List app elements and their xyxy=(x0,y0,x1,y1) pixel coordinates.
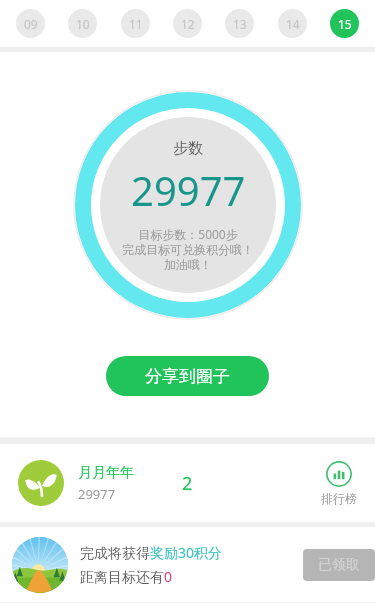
staticText: 2 xyxy=(182,471,193,496)
button[interactable]: 排行榜 xyxy=(321,461,357,506)
staticText: 月月年年 xyxy=(78,464,134,482)
staticText: 加油哦！ xyxy=(164,257,212,272)
button[interactable]: 10 xyxy=(68,9,97,38)
staticText: 排行榜 xyxy=(321,491,357,506)
staticText: 完成将获得奖励30积分 xyxy=(80,543,223,562)
staticText: 已领取 xyxy=(318,556,360,574)
button[interactable]: 分享到圈子 xyxy=(106,356,269,396)
staticText: 完成目标可兑换积分哦！ xyxy=(122,242,254,257)
button[interactable]: 09 xyxy=(16,9,45,38)
staticText: 15 xyxy=(338,16,352,32)
button[interactable]: 14 xyxy=(278,9,307,38)
button[interactable]: 11 xyxy=(121,9,150,38)
staticText: 距离目标还有0 xyxy=(80,567,173,586)
staticText: 分享到圈子 xyxy=(145,366,230,387)
staticText: 29977 xyxy=(131,163,246,217)
staticText: 13 xyxy=(233,16,247,32)
staticText: 11 xyxy=(129,16,143,32)
button[interactable]: 完成将获得奖励30积分 xyxy=(0,527,375,602)
button[interactable]: 12 xyxy=(173,9,202,38)
button[interactable]: 15 xyxy=(330,9,359,38)
staticText: 29977 xyxy=(78,485,116,503)
staticText: 12 xyxy=(181,16,195,32)
staticText: 目标步数：5000步 xyxy=(138,226,238,242)
staticText: 步数 xyxy=(173,139,203,158)
button[interactable]: 已领取 xyxy=(303,549,375,581)
button[interactable]: 13 xyxy=(225,9,254,38)
staticText: 09 xyxy=(24,16,38,32)
staticText: 14 xyxy=(286,16,300,32)
staticText: 10 xyxy=(76,16,90,32)
button[interactable]: 月月年年 xyxy=(0,444,375,522)
